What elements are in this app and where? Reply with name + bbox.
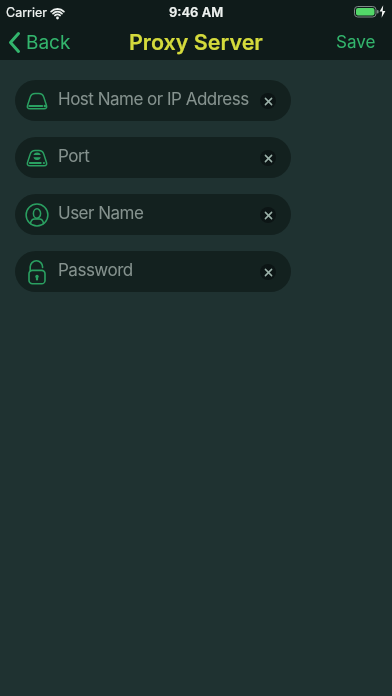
staticText: 9:46 AM (169, 4, 224, 20)
staticText: Host Name or IP Address (58, 89, 249, 110)
staticText: Carrier (6, 5, 47, 20)
staticText: Port (58, 146, 90, 167)
staticText: Password (58, 260, 133, 281)
button[interactable]: Back (8, 31, 71, 54)
staticText: Save (336, 32, 376, 53)
button[interactable]: Password (15, 251, 291, 292)
staticText: Proxy Server (129, 29, 263, 55)
button[interactable] (260, 150, 276, 166)
button[interactable]: Port (15, 137, 291, 178)
button[interactable] (260, 264, 276, 280)
button[interactable] (260, 207, 276, 223)
button[interactable]: Host Name or IP Address (15, 80, 291, 121)
staticText: User Name (58, 203, 144, 224)
button[interactable] (260, 93, 276, 109)
staticText: Back (26, 31, 71, 54)
button[interactable]: User Name (15, 194, 291, 235)
button[interactable]: Save (336, 32, 376, 53)
